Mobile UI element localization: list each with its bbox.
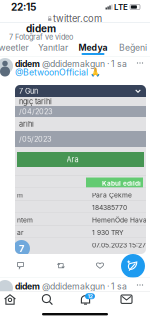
staticText: /04/2023 [19,107,53,116]
staticText: @BetwoonOfficial 🙏 [15,67,101,77]
button[interactable]: Notifications [80,293,96,306]
staticText: Medya [78,42,107,53]
staticText: m [17,191,23,199]
button[interactable]: More [133,58,147,68]
staticText: HemenÖde Havale [92,216,150,224]
button[interactable]: Messages [121,295,132,304]
staticText: 7 Gün [19,87,38,95]
staticText: Yanıtlar [38,42,68,53]
staticText: ngıç tarihi [19,97,52,106]
staticText: Tweetler [0,42,28,53]
button[interactable]: Tweetler [0,42,32,55]
staticText: 184385770 [92,204,127,212]
staticText: didem [15,58,40,69]
staticText: 7 Fotoğraf ve video [9,33,73,41]
staticText: ar [17,229,24,237]
button[interactable]: Medya [72,42,114,55]
button[interactable]: More [133,280,147,290]
staticText: didem [15,281,40,291]
staticText: arihi [19,120,34,128]
button[interactable]: Home [4,294,16,305]
staticText: /05/2023 [19,135,52,143]
staticText: Kabul edildi [102,180,141,187]
button[interactable]: Yanıtlar [32,42,74,55]
button[interactable]: Reply [17,262,24,269]
staticText: 12 [87,293,92,299]
button[interactable]: Search [42,294,53,305]
staticText: Beğeni [119,42,147,53]
staticText: Ara [66,155,78,164]
staticText: @ddidemakgun · 1 sa [42,58,127,69]
staticText: 7 [19,243,24,254]
staticText: Para Çekme [92,191,132,199]
staticText: didem [26,22,56,35]
button[interactable]: Like [96,262,104,269]
staticText: 1 930 TRY [92,229,124,237]
staticText: 22:15 [11,1,36,13]
staticText: ntem [17,216,33,224]
staticText: @ddidemakgun · 1 sa [42,281,127,291]
staticText: LTE [114,2,128,12]
button[interactable]: Compose tweet [121,254,145,278]
staticText: twitter.com [53,13,102,24]
staticText: 07.05.2023 15:27:52 [92,241,150,249]
button[interactable]: Retweet [57,262,65,269]
button[interactable]: Beğeni [112,42,150,55]
